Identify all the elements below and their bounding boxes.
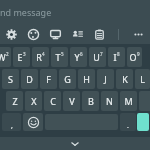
button[interactable]: GIF xyxy=(44,24,66,44)
button[interactable]: Y xyxy=(70,47,87,67)
button[interactable]: B xyxy=(82,91,99,111)
button[interactable]: R xyxy=(32,47,49,67)
staticText: L xyxy=(140,73,145,85)
staticText: 4 xyxy=(42,51,45,57)
staticText: C xyxy=(50,95,56,107)
button[interactable]: M xyxy=(120,91,137,111)
button[interactable]: , xyxy=(2,113,21,131)
staticText: K xyxy=(122,73,128,85)
staticText: E xyxy=(17,51,23,63)
button[interactable]: X xyxy=(25,91,42,111)
staticText: . xyxy=(127,121,129,131)
button[interactable]: Send xyxy=(137,113,149,131)
staticText: 8 xyxy=(117,51,120,57)
button[interactable]: W xyxy=(0,47,11,67)
button[interactable]: J xyxy=(97,69,114,89)
staticText: , xyxy=(11,121,13,131)
staticText: S xyxy=(8,73,13,85)
staticText: nd message xyxy=(0,6,52,18)
staticText: U xyxy=(93,51,100,63)
staticText: V xyxy=(69,95,75,107)
staticText: 5 xyxy=(61,51,64,57)
staticText: X xyxy=(31,95,37,107)
button[interactable]: O xyxy=(127,47,142,67)
staticText: W xyxy=(0,51,6,63)
staticText: 6 xyxy=(80,51,83,57)
staticText: O xyxy=(129,51,137,63)
staticText: N xyxy=(106,95,113,107)
staticText: G xyxy=(64,73,71,85)
staticText: D xyxy=(26,73,33,85)
staticText: 9 xyxy=(137,51,140,57)
button[interactable]: More options xyxy=(127,24,149,44)
button[interactable]: L xyxy=(135,69,150,89)
staticText: B xyxy=(88,95,94,107)
staticText: 3 xyxy=(23,51,26,57)
button[interactable]: Emoji xyxy=(23,113,43,131)
button[interactable]: N xyxy=(101,91,118,111)
staticText: R xyxy=(36,51,42,63)
staticText: I xyxy=(113,51,117,63)
staticText: M xyxy=(124,95,133,107)
button[interactable]: E xyxy=(13,47,30,67)
staticText: T xyxy=(55,51,61,63)
button[interactable]: Clipboard xyxy=(88,24,110,44)
button[interactable]: C xyxy=(44,91,61,111)
staticText: Z xyxy=(12,95,18,107)
button[interactable]: H xyxy=(78,69,95,89)
button[interactable]: K xyxy=(116,69,133,89)
button[interactable]: Hide keyboard xyxy=(0,137,150,150)
button[interactable]: U xyxy=(89,47,106,67)
staticText: H xyxy=(83,73,90,85)
button[interactable]: T xyxy=(51,47,68,67)
staticText: Y xyxy=(74,51,80,63)
button[interactable]: Translate xyxy=(66,24,88,44)
button[interactable]: V xyxy=(63,91,80,111)
button[interactable]: Settings xyxy=(0,24,22,44)
button[interactable]: I xyxy=(108,47,125,67)
button[interactable]: D xyxy=(21,69,38,89)
button[interactable]: G xyxy=(59,69,76,89)
staticText: F xyxy=(46,73,51,85)
staticText: 7 xyxy=(100,51,103,57)
button[interactable]: . xyxy=(120,113,136,131)
staticText: 2 xyxy=(6,51,9,57)
button[interactable]: Themes xyxy=(22,24,44,44)
staticText: J xyxy=(104,73,107,85)
button[interactable]: S xyxy=(2,69,19,89)
button[interactable]: F xyxy=(40,69,57,89)
button[interactable]: Z xyxy=(6,91,23,111)
